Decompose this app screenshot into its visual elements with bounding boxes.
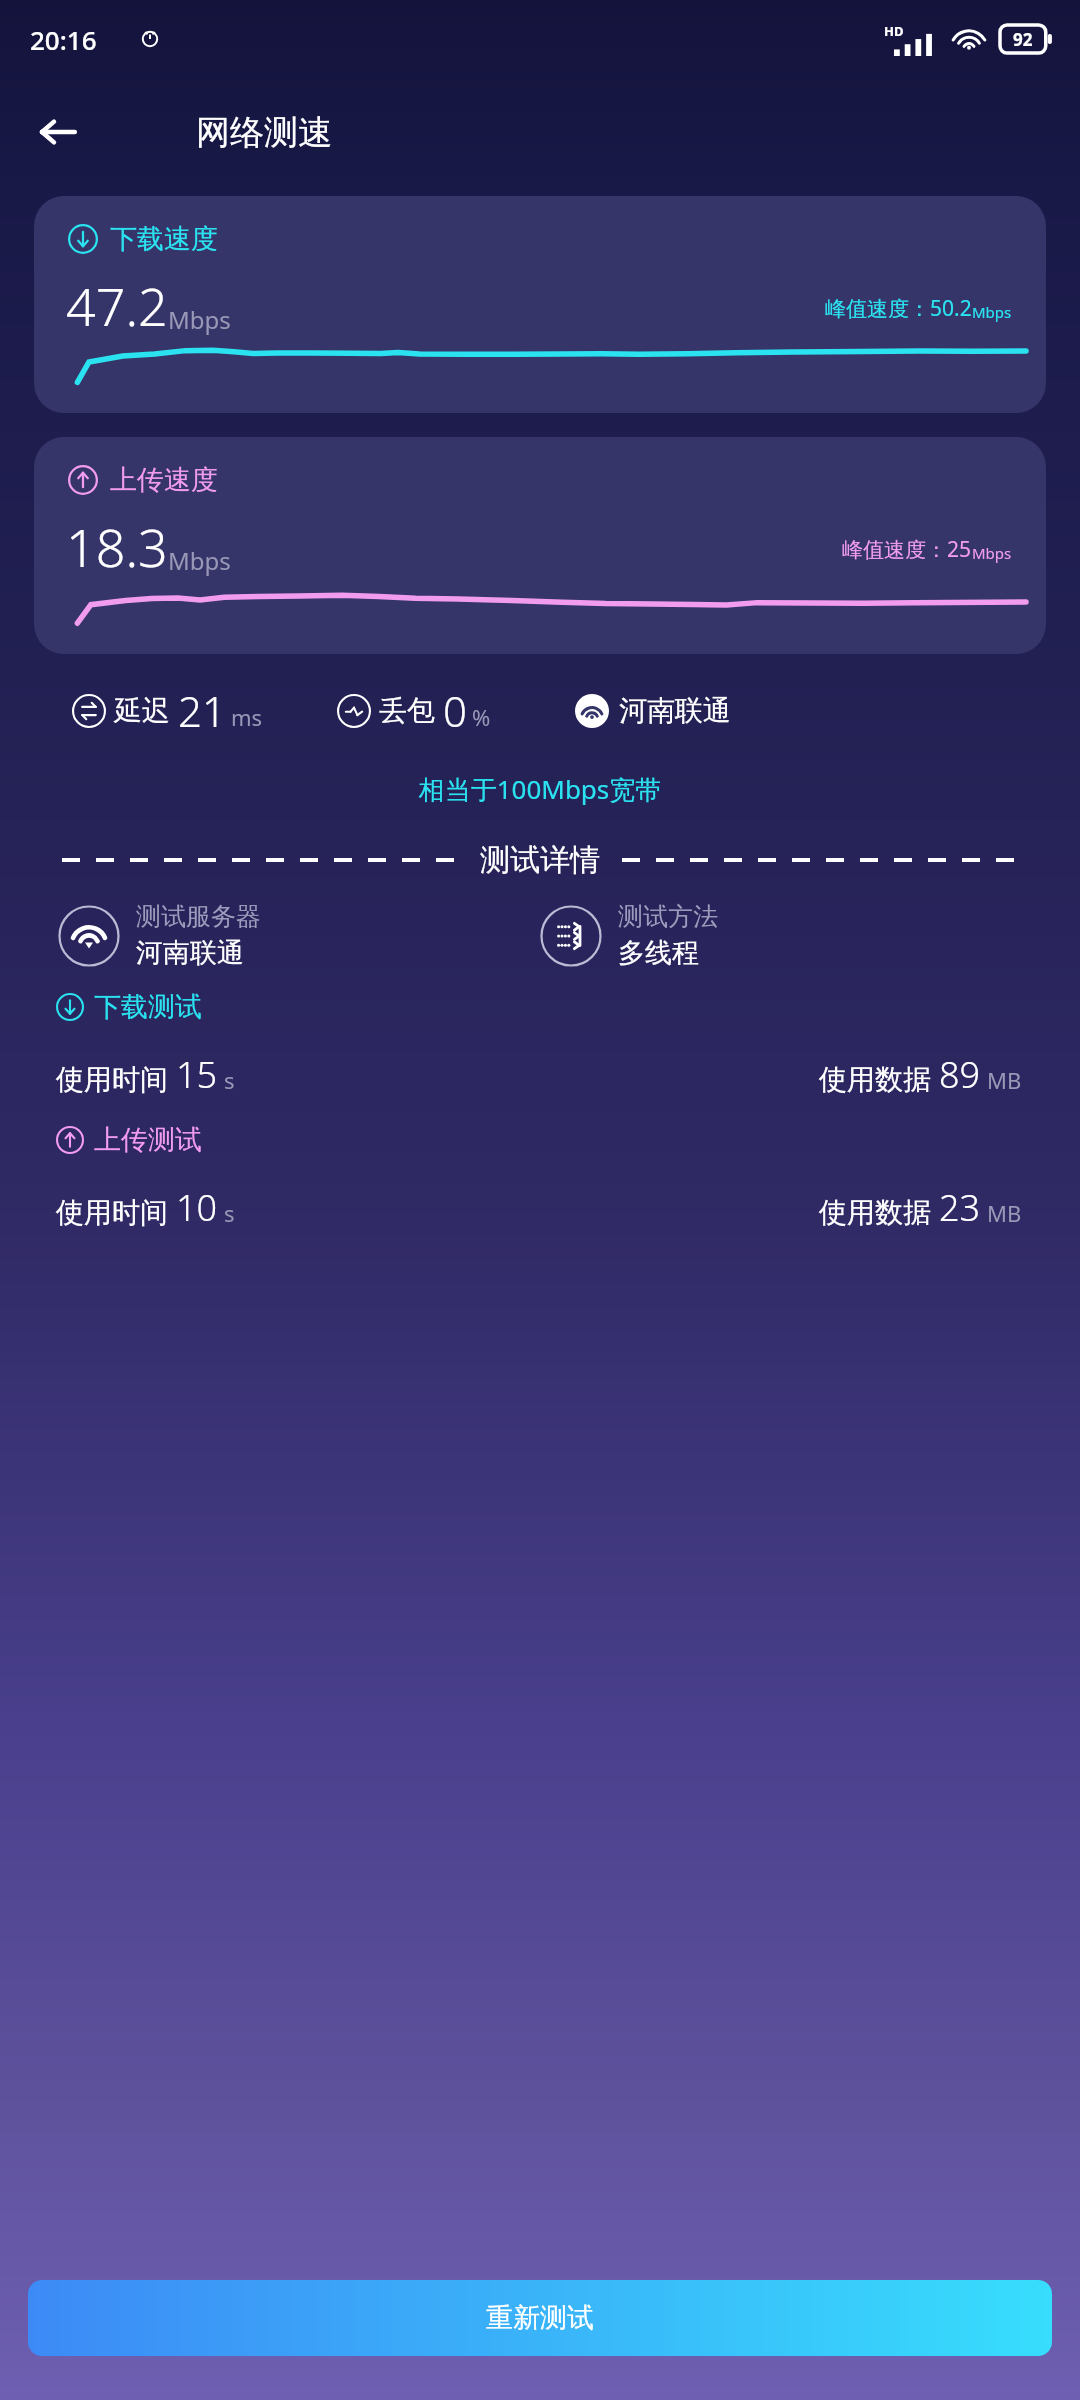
staticText: 上传测试	[94, 1123, 202, 1157]
staticText: 92	[1013, 28, 1033, 51]
staticText: 下载测试	[94, 990, 202, 1024]
staticText: Mbps	[168, 303, 231, 336]
staticText: 15	[176, 1050, 218, 1099]
staticText: 多线程	[618, 936, 699, 970]
staticText: MB	[987, 1065, 1022, 1095]
staticText: 河南联通	[136, 936, 244, 970]
staticText: 23	[939, 1183, 981, 1232]
staticText: MB	[987, 1198, 1022, 1228]
staticText: 20:16	[30, 22, 97, 57]
staticText: Mbps	[972, 302, 1012, 322]
staticText: 峰值速度：25	[842, 535, 972, 564]
button[interactable]: 测试服务器	[58, 901, 540, 970]
staticText: 测试服务器	[136, 901, 261, 932]
staticText: %	[472, 702, 491, 732]
staticText: HD	[884, 22, 904, 40]
button[interactable]: 上传速度	[34, 437, 1046, 654]
staticText: 下载速度	[110, 222, 218, 256]
staticText: 18.3	[66, 511, 168, 582]
staticText: 上传速度	[110, 463, 218, 497]
staticText: 47.2	[66, 270, 168, 341]
staticText: 使用数据	[819, 1062, 931, 1097]
staticText: Mbps	[972, 543, 1012, 563]
staticText: ms	[231, 702, 263, 732]
staticText: 峰值速度：50.2	[825, 294, 972, 323]
button[interactable]: 下载速度	[34, 196, 1046, 413]
staticText: s	[224, 1198, 235, 1228]
staticText: Mbps	[168, 544, 231, 577]
staticText: 测试详情	[480, 841, 600, 879]
staticText: 相当于100Mbps宽带	[0, 771, 1080, 807]
staticText: 测试方法	[618, 901, 718, 932]
staticText: 0	[443, 682, 467, 739]
staticText: 延迟	[114, 693, 170, 728]
staticText: 使用数据	[819, 1195, 931, 1230]
staticText: s	[224, 1065, 235, 1095]
button[interactable]: 河南联通	[575, 693, 731, 728]
button[interactable]: 延迟	[72, 682, 263, 739]
staticText: 网络测速	[196, 111, 332, 154]
button[interactable]: 丢包	[337, 682, 491, 739]
staticText: 89	[939, 1050, 981, 1099]
button[interactable]: 重新测试	[28, 2280, 1052, 2356]
staticText: 丢包	[379, 693, 435, 728]
staticText: 使用时间	[56, 1195, 168, 1230]
staticText: 使用时间	[56, 1062, 168, 1097]
button[interactable]: 测试方法	[540, 901, 1022, 970]
staticText: 重新测试	[486, 2301, 594, 2335]
staticText: 21	[178, 682, 226, 739]
staticText: 10	[176, 1183, 218, 1232]
staticText: 河南联通	[619, 693, 731, 728]
button[interactable]: Back	[26, 100, 90, 164]
